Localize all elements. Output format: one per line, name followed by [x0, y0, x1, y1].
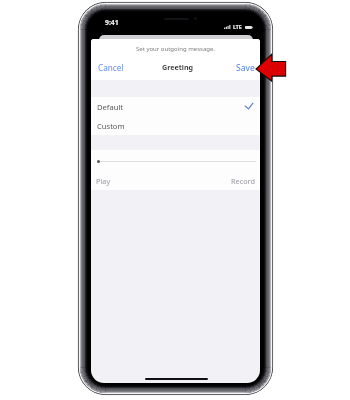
staticText: Custom — [97, 121, 125, 131]
staticText: Set your outgoing message. — [91, 45, 260, 53]
button[interactable]: Default — [91, 97, 260, 116]
button[interactable]: Play — [96, 176, 111, 186]
staticText: Greeting — [162, 62, 194, 72]
other: Tap Save — [255, 54, 286, 84]
button[interactable]: Custom — [91, 116, 260, 135]
button[interactable]: Cancel — [91, 58, 132, 76]
staticText: Default — [97, 102, 124, 112]
staticText: Save — [236, 62, 255, 72]
staticText: LTE — [233, 23, 242, 30]
staticText: 9:41 — [105, 18, 119, 27]
staticText: Cancel — [98, 62, 124, 72]
button[interactable]: Record — [231, 176, 255, 186]
button[interactable]: Save — [228, 58, 260, 76]
